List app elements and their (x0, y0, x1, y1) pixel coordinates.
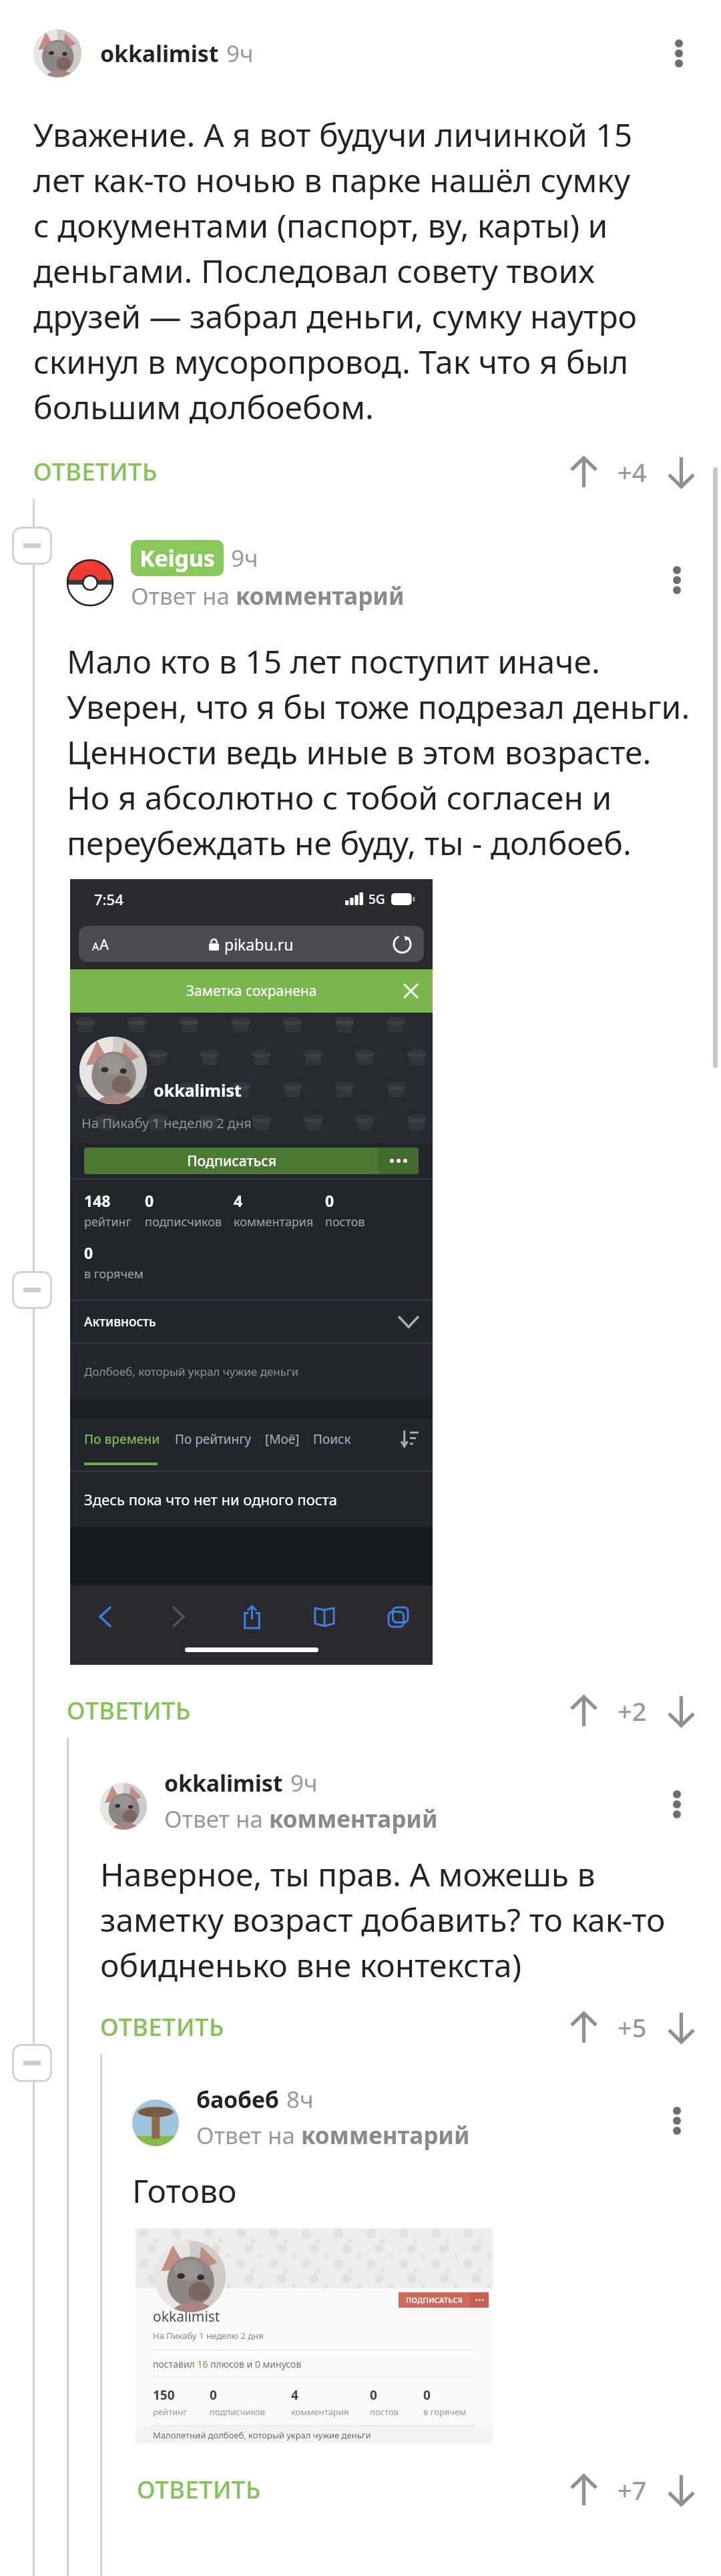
staticText: okkalimist (100, 38, 219, 69)
staticText: A (99, 934, 109, 954)
staticText: pikabu.ru (224, 934, 294, 955)
button[interactable]: По рейтингу (175, 1431, 252, 1448)
button[interactable]: ОТВЕТИТЬ (137, 2463, 261, 2517)
staticText: А (92, 939, 99, 954)
button[interactable]: ПОДПИСАТЬСЯ (399, 2292, 470, 2308)
staticText: ОТВЕТИТЬ (100, 2011, 224, 2043)
button[interactable]: Downvote (657, 445, 705, 499)
staticText: в горячем (423, 2406, 467, 2418)
staticText: На Пикабу 1 неделю 2 дня (153, 2330, 264, 2342)
staticText: 4 (291, 2386, 298, 2404)
staticText: 5G (369, 890, 385, 908)
button[interactable]: Upvote (559, 1684, 608, 1738)
staticText: ОТВЕТИТЬ (67, 1694, 191, 1727)
button[interactable]: [Моё] (265, 1431, 300, 1448)
other: Sort (401, 1431, 419, 1448)
staticText: Заметка сохранена (186, 981, 317, 1001)
button[interactable]: Upvote (559, 2463, 608, 2517)
button[interactable]: Upvote (559, 2001, 608, 2054)
staticText: баобеб (196, 2084, 279, 2115)
button[interactable]: Back (86, 1598, 124, 1635)
button[interactable]: Upvote (559, 445, 608, 499)
staticText: 9ч (226, 37, 254, 69)
staticText: 7:54 (94, 889, 124, 909)
staticText: подписчиков (210, 2406, 266, 2418)
staticText: постов (325, 1214, 365, 1230)
other: Reload (394, 936, 411, 953)
staticText: 9ч (231, 542, 258, 574)
button[interactable]: Поиск (313, 1431, 351, 1448)
staticText: 4 (234, 1190, 243, 1211)
button[interactable]: Share (233, 1598, 270, 1635)
button[interactable]: ОТВЕТИТЬ (100, 2000, 224, 2054)
staticText: 8ч (286, 2083, 314, 2115)
staticText: Ответ на комментарий (196, 2119, 470, 2151)
staticText: рейтинг (84, 1214, 132, 1230)
button[interactable]: More options (650, 1778, 704, 1831)
button[interactable]: More options (650, 553, 704, 607)
staticText: +2 (618, 1694, 647, 1728)
staticText: 0 (325, 1190, 334, 1211)
button[interactable]: Активность (70, 1301, 433, 1342)
staticText: 9ч (290, 1767, 318, 1799)
button[interactable]: Downvote (657, 1684, 705, 1738)
staticText: Keigus (140, 543, 215, 573)
staticText: ОТВЕТИТЬ (33, 455, 158, 488)
staticText: ПОДПИСАТЬСЯ (406, 2295, 463, 2305)
button[interactable]: pikabu.ru (79, 926, 424, 962)
other: Close (404, 984, 418, 998)
staticText: ОТВЕТИТЬ (137, 2473, 261, 2506)
staticText: 148 (84, 1190, 111, 1211)
staticText: 0 (145, 1190, 154, 1211)
staticText: okkalimist (164, 1768, 283, 1798)
staticText: +4 (618, 455, 647, 489)
button[interactable]: Forward (160, 1598, 197, 1635)
staticText: Активность (84, 1313, 156, 1330)
button[interactable]: Collapse thread (12, 527, 52, 565)
staticText: 0 (423, 2386, 431, 2404)
button[interactable]: ОТВЕТИТЬ (33, 445, 158, 499)
button[interactable]: Downvote (657, 2463, 705, 2517)
button[interactable]: More (470, 2292, 489, 2308)
staticText: Здесь пока что нет ни одного поста (84, 1489, 338, 1509)
staticText: 0 (84, 1242, 93, 1263)
staticText: 0 (370, 2386, 377, 2404)
staticText: в горячем (84, 1266, 144, 1282)
staticText: подписчиков (145, 1214, 222, 1230)
staticText: комментария (291, 2406, 349, 2418)
staticText: +5 (618, 2010, 647, 2045)
staticText: Уважение. А я вот будучи личинкой 15 лет… (33, 113, 654, 429)
staticText: okkalimist (154, 1079, 242, 1101)
button[interactable]: Подписаться (84, 1147, 379, 1174)
button[interactable]: Bookmarks (306, 1598, 343, 1635)
staticText: Готово (132, 2169, 237, 2212)
button[interactable]: Keigus (140, 543, 215, 573)
staticText: Подписаться (187, 1151, 276, 1171)
staticText: Ответ на комментарий (131, 580, 405, 612)
staticText: Мало кто в 15 лет поступит иначе. Уверен… (67, 639, 690, 864)
staticText: комментария (234, 1214, 314, 1230)
button[interactable]: ОТВЕТИТЬ (67, 1684, 191, 1738)
staticText: Малолетний долбоеб, который украл чужие … (153, 2429, 371, 2441)
button[interactable]: More options (652, 27, 706, 80)
staticText: Ответ на комментарий (164, 1803, 438, 1835)
staticText: Долбоеб, который украл чужие деньги (84, 1364, 299, 1379)
staticText: 0 (210, 2386, 217, 2404)
button[interactable]: Collapse thread (12, 2044, 52, 2082)
button[interactable]: По времени (84, 1431, 160, 1448)
staticText: +7 (618, 2473, 647, 2507)
staticText: На Пикабу 1 неделю 2 дня (81, 1114, 252, 1132)
staticText: постов (370, 2406, 399, 2418)
button[interactable]: More (379, 1147, 419, 1174)
button[interactable]: Tabs (379, 1598, 417, 1635)
staticText: рейтинг (153, 2406, 187, 2418)
staticText: Наверное, ты прав. А можешь в заметку во… (100, 1852, 666, 1987)
staticText: 150 (153, 2386, 175, 2404)
staticText: okkalimist (153, 2307, 220, 2326)
button[interactable]: Downvote (657, 2001, 705, 2054)
staticText: поставил 16 плюсов и 0 минусов (153, 2358, 302, 2370)
button[interactable]: More options (650, 2094, 704, 2147)
button[interactable]: Collapse thread (12, 1271, 52, 1309)
